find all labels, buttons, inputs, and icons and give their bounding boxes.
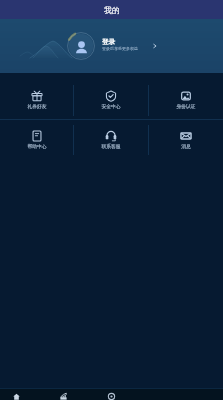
button[interactable]: 联系客服 (74, 120, 148, 160)
staticText: 礼券好友 (27, 103, 47, 109)
button[interactable]: Home (0, 389, 38, 400)
staticText: 安全中心 (101, 103, 121, 109)
button[interactable]: Profile (89, 389, 133, 400)
button[interactable]: 身份认证 (149, 73, 223, 119)
staticText: 我的 (104, 5, 120, 15)
button[interactable]: 礼券好友 (0, 73, 73, 119)
button[interactable]: 登录 (0, 19, 223, 73)
staticText: 登录后享受更多权益 (102, 46, 138, 51)
staticText: 消息 (181, 143, 191, 149)
staticText: 联系客服 (101, 143, 121, 149)
button[interactable]: 消息 (149, 120, 223, 160)
staticText: 身份认证 (176, 103, 196, 109)
staticText: 帮助中心 (27, 143, 47, 149)
button[interactable]: Market (41, 389, 85, 400)
staticText: 登录 (102, 38, 115, 46)
button[interactable]: 帮助中心 (0, 120, 73, 160)
button[interactable]: 安全中心 (74, 73, 148, 119)
